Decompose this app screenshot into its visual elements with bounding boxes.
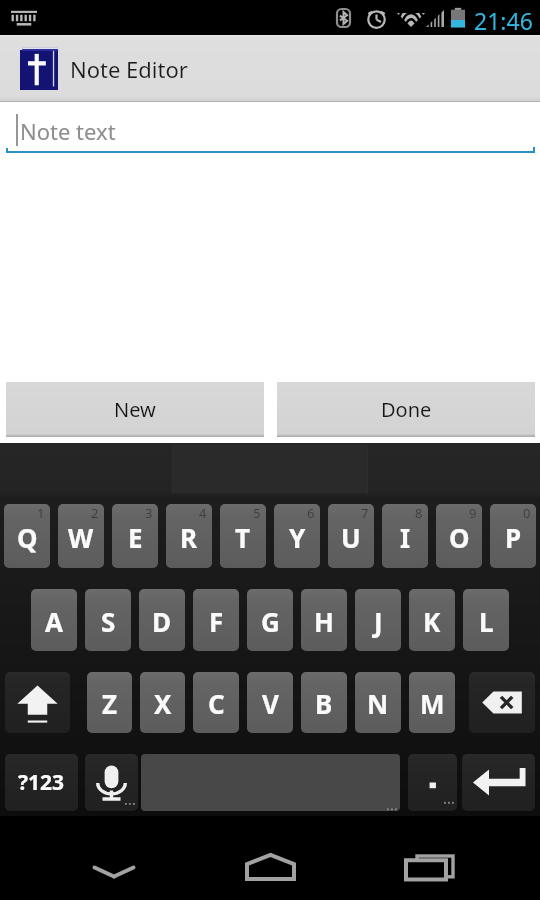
button[interactable]: H	[301, 589, 347, 651]
staticText: H	[314, 604, 334, 639]
button[interactable]: X	[140, 672, 185, 733]
staticText: 1	[37, 504, 45, 522]
staticText: U	[341, 520, 361, 555]
button[interactable]: J	[355, 589, 401, 651]
button[interactable]: Y	[274, 504, 320, 568]
staticText: R	[180, 520, 198, 555]
button[interactable]: L	[463, 589, 509, 651]
staticText: Done	[381, 396, 432, 423]
staticText: 0	[523, 504, 531, 522]
staticText: N	[367, 686, 389, 721]
staticText: I	[400, 520, 411, 555]
button[interactable]: C	[193, 672, 239, 733]
button[interactable]: T	[220, 504, 266, 568]
staticText: Y	[289, 520, 306, 555]
staticText: 5	[253, 504, 261, 522]
staticText: O	[449, 520, 470, 555]
button[interactable]: R	[166, 504, 212, 568]
staticText: Note Editor	[70, 54, 188, 84]
staticText: V	[262, 686, 279, 721]
staticText: E	[128, 520, 143, 555]
button[interactable]: S	[85, 589, 131, 651]
button[interactable]: Voice input	[85, 754, 138, 811]
button[interactable]: E	[112, 504, 158, 568]
button[interactable]: Z	[87, 672, 132, 733]
staticText: New	[114, 396, 156, 423]
button[interactable]: Backspace	[469, 672, 535, 733]
staticText: 6	[307, 504, 315, 522]
button[interactable]: M	[409, 672, 455, 733]
button[interactable]: V	[247, 672, 293, 733]
staticText: 9	[469, 504, 477, 522]
button[interactable]: O	[436, 504, 482, 568]
button[interactable]: F	[193, 589, 239, 651]
staticText: Q	[17, 520, 38, 555]
button[interactable]: N	[355, 672, 401, 733]
button[interactable]: K	[409, 589, 455, 651]
button[interactable]: B	[301, 672, 347, 733]
staticText: G	[261, 604, 280, 639]
button[interactable]: Q	[4, 504, 50, 568]
staticText: 3	[145, 504, 153, 522]
button[interactable]: W	[58, 504, 104, 568]
button[interactable]: Home	[230, 847, 310, 887]
staticText: Note text	[20, 116, 116, 146]
staticText: W	[68, 520, 94, 555]
staticText: D	[152, 604, 172, 639]
staticText: T	[235, 520, 251, 555]
button[interactable]: U	[328, 504, 374, 568]
staticText: A	[45, 604, 63, 639]
button[interactable]: Enter	[462, 754, 535, 811]
staticText: L	[479, 604, 494, 639]
button[interactable]: Period	[408, 754, 457, 811]
staticText: K	[423, 604, 441, 639]
button[interactable]: A	[31, 589, 77, 651]
staticText: 4	[199, 504, 207, 522]
staticText: C	[208, 686, 225, 721]
button[interactable]: Done	[277, 382, 535, 437]
button[interactable]: P	[490, 504, 536, 568]
button[interactable]: Shift	[5, 672, 70, 733]
button[interactable]: D	[139, 589, 185, 651]
staticText: 2	[91, 504, 99, 522]
staticText: B	[315, 686, 333, 721]
staticText: ?123	[18, 768, 65, 797]
button[interactable]: G	[247, 589, 293, 651]
staticText: S	[101, 604, 116, 639]
button[interactable]: I	[382, 504, 428, 568]
button[interactable]: Hide keyboard	[74, 852, 154, 892]
staticText: F	[209, 604, 224, 639]
staticText: J	[374, 604, 383, 639]
button[interactable]: Note text	[0, 103, 540, 153]
button[interactable]: New	[6, 382, 264, 437]
staticText: 8	[415, 504, 423, 522]
staticText: 21:46	[474, 5, 533, 36]
staticText: P	[505, 520, 522, 555]
button[interactable]: Recent apps	[389, 847, 469, 887]
staticText: X	[154, 686, 172, 721]
staticText: Z	[102, 686, 118, 721]
button[interactable]: ?123	[5, 754, 78, 811]
staticText: 7	[361, 504, 369, 522]
staticText: M	[420, 686, 445, 721]
